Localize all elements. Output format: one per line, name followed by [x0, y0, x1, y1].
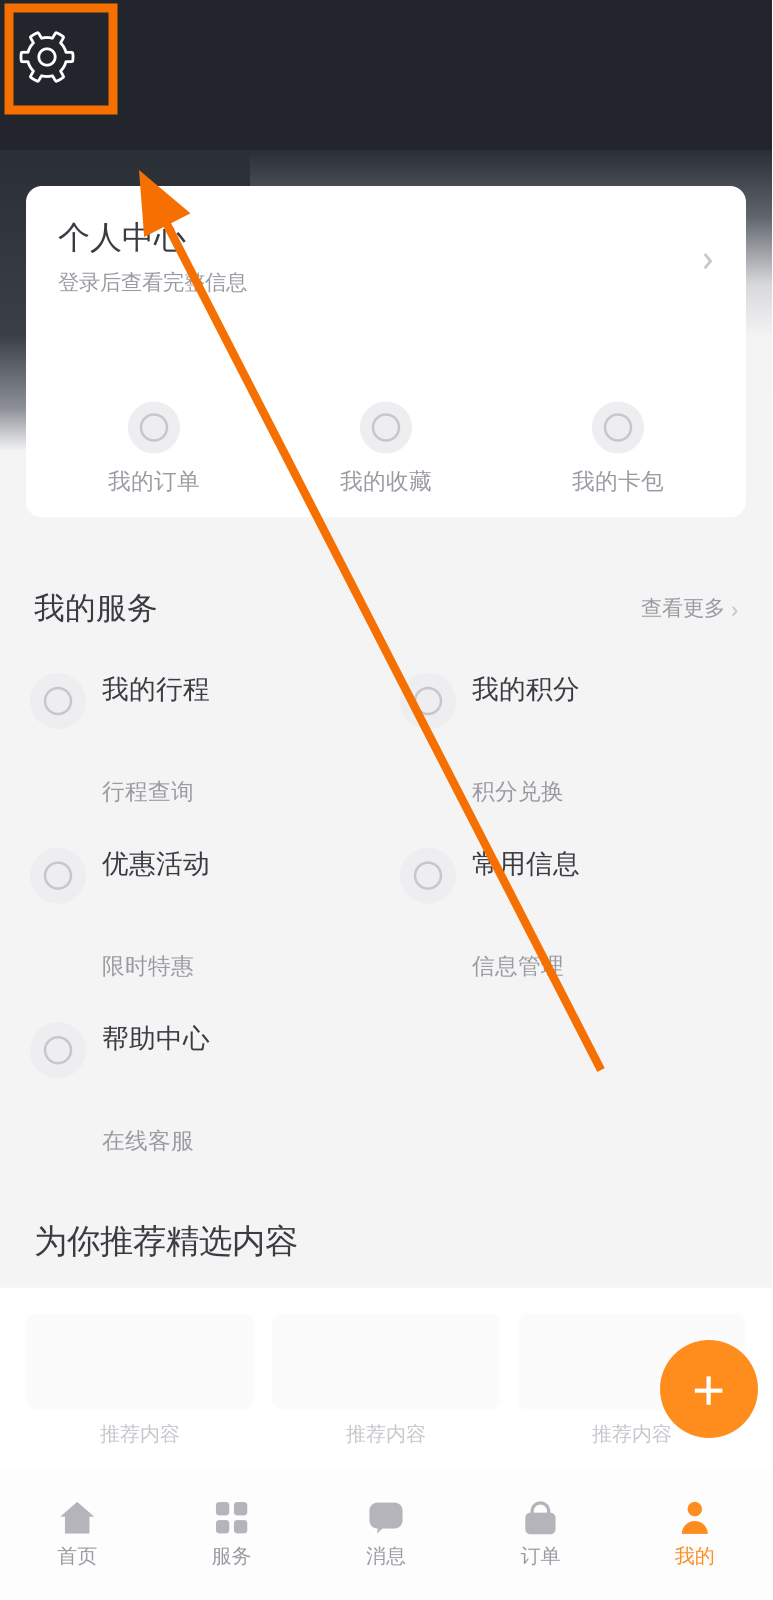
staticText: 我的订单	[108, 467, 200, 495]
staticText: 查看更多	[641, 595, 725, 621]
staticText: 我的服务	[34, 589, 158, 627]
button[interactable]: 服务	[154, 1488, 309, 1580]
staticText: 我的积分	[472, 673, 580, 706]
staticText: 我的	[675, 1544, 715, 1568]
staticText: 信息管理	[472, 952, 564, 980]
staticText: 首页	[57, 1544, 97, 1568]
staticText: ›	[731, 592, 738, 624]
staticText: +	[692, 1350, 726, 1428]
button[interactable]: 帮助中心	[30, 986, 372, 1161]
button[interactable]: 我的订单	[38, 401, 270, 495]
staticText: 推荐内容	[346, 1422, 426, 1446]
button[interactable]: 订单	[463, 1488, 618, 1580]
staticText: 消息	[366, 1544, 406, 1568]
button[interactable]: Settings	[10, 20, 84, 94]
button[interactable]: Compose	[660, 1340, 758, 1438]
staticText: 积分兑换	[472, 778, 564, 806]
staticText: 个人中心	[58, 218, 186, 257]
button[interactable]: 首页	[0, 1488, 154, 1580]
button[interactable]: 我的收藏	[270, 401, 502, 495]
button[interactable]: 优惠活动	[30, 812, 372, 986]
button[interactable]: 我的	[618, 1488, 772, 1580]
button[interactable]: 推荐内容	[26, 1314, 254, 1446]
staticText: 帮助中心	[102, 1022, 210, 1055]
button[interactable]: 推荐内容	[518, 1314, 746, 1446]
staticText: 我的行程	[102, 673, 210, 706]
button[interactable]: 消息	[309, 1488, 463, 1580]
staticText: 订单	[520, 1544, 560, 1568]
staticText: 在线客服	[102, 1127, 194, 1155]
staticText: 服务	[212, 1544, 252, 1568]
staticText: 我的卡包	[572, 467, 664, 495]
staticText: 优惠活动	[102, 848, 210, 880]
staticText: 行程查询	[102, 778, 194, 806]
button[interactable]: 我的行程	[30, 637, 372, 812]
staticText: 推荐内容	[100, 1422, 180, 1446]
staticText: 推荐内容	[592, 1422, 672, 1446]
staticText: 限时特惠	[102, 952, 194, 980]
staticText: ›	[702, 232, 714, 282]
button[interactable]: 我的卡包	[502, 401, 734, 495]
button[interactable]: 查看更多	[641, 592, 738, 624]
staticText: 我的收藏	[340, 467, 432, 495]
button[interactable]: 常用信息	[400, 812, 742, 986]
button[interactable]: 我的积分	[400, 637, 742, 812]
button[interactable]: 推荐内容	[272, 1314, 500, 1446]
staticText: 为你推荐精选内容	[34, 1221, 298, 1262]
staticText: 登录后查看完整信息	[58, 269, 247, 295]
staticText: 常用信息	[472, 848, 580, 880]
